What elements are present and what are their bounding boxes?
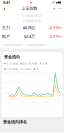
staticText: 11:30: [32, 101, 36, 103]
staticText: 主力: [2, 25, 10, 30]
button[interactable]: More: [57, 5, 62, 12]
staticText: ▾: [61, 35, 62, 38]
staticText: ⋯: [58, 6, 62, 11]
staticText: 3000: [3, 72, 7, 74]
staticText: ＋: [52, 6, 56, 11]
staticText: 中单净额: [6, 67, 18, 71]
staticText: 主力净额: [6, 62, 18, 65]
staticText: 1000: [3, 92, 7, 94]
staticText: 15:00: [56, 101, 60, 103]
staticText: 44.76亿: [22, 25, 35, 30]
staticText: 资金流向排名: [3, 119, 27, 124]
staticText: 0: [5, 102, 6, 103]
button[interactable]: Add: [51, 5, 57, 12]
button[interactable]: Back: [1, 5, 7, 12]
staticText: 散户: [2, 34, 10, 39]
staticText: 今日资金净流入: [21, 14, 42, 17]
staticText: 上证指数: [21, 6, 37, 11]
staticText: 大单: [42, 62, 48, 65]
staticText: ◗: [56, 1, 57, 4]
staticText: 09:30: [9, 100, 12, 103]
staticText: 超大单净额: [23, 62, 38, 65]
staticText: 资金流向: [4, 54, 20, 59]
staticText: 10:30: [20, 101, 24, 103]
staticText: 小单净: [23, 67, 32, 71]
staticText: 数据仅供参考，不构成投资建议: [5, 43, 47, 47]
staticText: 净: [36, 67, 39, 71]
staticText: 行业板块资金: [23, 19, 41, 23]
staticText: 2000: [3, 82, 7, 84]
staticText: 9:41: [3, 0, 10, 5]
staticText: ııl: [52, 1, 55, 4]
staticText: +0.93%: [48, 25, 60, 30]
staticText: ‹: [3, 4, 5, 13]
staticText: 14:00: [44, 101, 48, 103]
staticText: 52.4万: [24, 34, 35, 39]
staticText: -0.57%: [49, 34, 60, 39]
staticText: •: [2, 42, 4, 48]
staticText: ▾: [61, 26, 62, 29]
